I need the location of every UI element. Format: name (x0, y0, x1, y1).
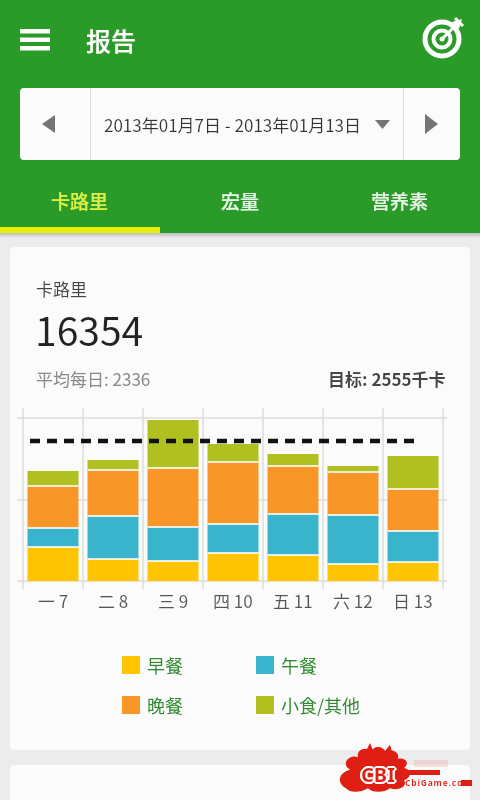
staticText: 2013年01月7日 - 2013年01月13日 (104, 112, 362, 137)
staticText: 午餐 (281, 652, 317, 678)
button[interactable]: 早餐 (122, 652, 183, 678)
staticText: CBI (361, 761, 395, 788)
button[interactable]: 午餐 (256, 652, 317, 678)
staticText: 目标: 2555千卡 (328, 366, 446, 391)
button[interactable]: 2013年01月7日 - 2013年01月13日 (91, 88, 403, 160)
staticText: CBI (361, 759, 395, 786)
staticText: 晚餐 (147, 692, 183, 718)
staticText: CBI (363, 761, 397, 788)
staticText: CBI (359, 761, 393, 788)
staticText: 六 12 (333, 588, 373, 612)
staticText: 五 11 (273, 588, 313, 612)
button[interactable] (403, 88, 460, 160)
button[interactable]: 宏量 (160, 176, 320, 226)
button[interactable]: 晚餐 (122, 692, 183, 718)
staticText: 日 13 (393, 588, 433, 612)
staticText: 营养素 (371, 187, 429, 215)
staticText: 一 7 (38, 588, 69, 612)
button[interactable]: 卡路里 (0, 176, 160, 226)
staticText: 四 10 (213, 588, 253, 612)
staticText: 16354 (35, 301, 144, 357)
staticText: 二 8 (98, 588, 129, 612)
staticText: CbiGame.com (405, 777, 473, 789)
staticText: CBI (360, 762, 394, 789)
button[interactable]: 营养素 (320, 176, 480, 226)
button[interactable] (20, 88, 90, 160)
staticText: 平均每日: 2336 (36, 366, 151, 391)
staticText: 卡路里 (51, 187, 109, 215)
staticText: 三 9 (158, 588, 189, 612)
staticText: CBI (362, 760, 396, 787)
button[interactable]: 小食/其他 (256, 692, 361, 718)
staticText: 宏量 (221, 187, 260, 215)
staticText: 报告 (86, 22, 137, 58)
staticText: CBI (360, 760, 394, 787)
staticText: 早餐 (147, 652, 183, 678)
staticText: 小食/其他 (281, 692, 361, 718)
staticText: CBI (362, 762, 396, 789)
staticText: 卡路里 (36, 276, 87, 301)
button[interactable] (418, 12, 470, 64)
button[interactable] (14, 22, 58, 56)
staticText: CBI (361, 763, 395, 790)
